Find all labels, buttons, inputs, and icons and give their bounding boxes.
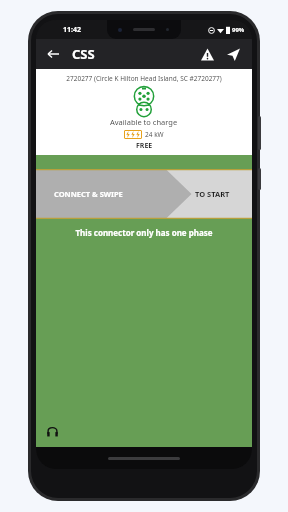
staticText: CONNECT & SWIPE: [54, 189, 123, 199]
staticText: This connector only has one phase: [36, 227, 252, 238]
staticText: 2720277 (Circle K Hilton Head Island, SC…: [36, 74, 252, 83]
button[interactable]: Navigate: [220, 41, 246, 67]
button[interactable]: CONNECT & SWIPE: [36, 169, 252, 219]
button[interactable]: Warning: [194, 41, 220, 67]
staticText: TO START: [195, 189, 230, 199]
staticText: 24 kW: [145, 130, 164, 139]
staticText: FREE: [136, 141, 153, 151]
staticText: 11:42: [63, 25, 81, 35]
staticText: Available to charge: [110, 117, 178, 127]
button[interactable]: Support headset: [44, 423, 60, 439]
staticText: CSS: [72, 45, 95, 63]
button[interactable]: Back: [42, 43, 64, 65]
staticText: 99%: [232, 26, 245, 34]
